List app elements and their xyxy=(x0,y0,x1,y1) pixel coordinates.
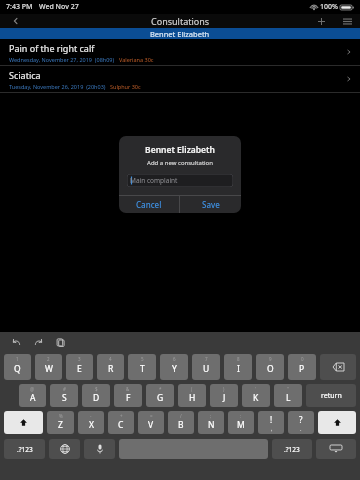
staticText: M xyxy=(237,419,245,431)
staticText: P xyxy=(299,363,305,375)
button[interactable]: ( xyxy=(178,384,206,407)
button[interactable]: 3 xyxy=(66,354,93,380)
staticText: Save xyxy=(202,199,220,210)
button[interactable]: ) xyxy=(210,384,238,407)
button[interactable]: Sciatica xyxy=(0,66,360,93)
staticText: ; xyxy=(210,413,212,419)
button[interactable]: 8 xyxy=(224,354,252,380)
staticText: Wed Nov 27 xyxy=(39,2,79,12)
button[interactable]: Back xyxy=(0,14,32,28)
staticText: Valeriana 30c xyxy=(119,56,154,63)
staticText: 7:43 PM xyxy=(6,2,33,12)
staticText: Main complaint xyxy=(130,176,178,185)
staticText: D xyxy=(93,392,100,404)
button[interactable]: 9 xyxy=(256,354,284,380)
button[interactable]: * xyxy=(146,384,174,407)
button[interactable]: + xyxy=(108,411,134,434)
button[interactable]: ? xyxy=(288,411,314,434)
staticText: A xyxy=(30,392,36,404)
staticText: C xyxy=(118,419,124,431)
button[interactable]: Backspace xyxy=(320,354,356,380)
staticText: ? xyxy=(299,414,303,425)
staticText: W xyxy=(45,363,53,375)
staticText: + xyxy=(120,413,123,419)
staticText: ) xyxy=(223,386,225,392)
button[interactable]: Emoji and languages xyxy=(49,439,80,459)
button[interactable]: Main complaint xyxy=(127,174,233,187)
staticText: E xyxy=(77,363,82,375)
staticText: T xyxy=(140,363,145,375)
staticText: % xyxy=(59,413,63,419)
button[interactable]: .?123 xyxy=(272,439,312,459)
button[interactable]: 1 xyxy=(4,354,31,380)
button[interactable]: Menu xyxy=(334,14,360,28)
staticText: 2 xyxy=(47,356,50,362)
button[interactable]: ; xyxy=(198,411,224,434)
button[interactable]: @ xyxy=(19,384,46,407)
button[interactable]: % xyxy=(47,411,74,434)
button[interactable]: # xyxy=(50,384,78,407)
staticText: , xyxy=(271,425,273,432)
staticText: G xyxy=(157,392,164,404)
staticText: / xyxy=(180,413,182,419)
staticText: Consultations xyxy=(151,15,210,27)
staticText: # xyxy=(63,386,66,392)
button[interactable]: - xyxy=(78,411,104,434)
button[interactable]: 5 xyxy=(128,354,156,380)
staticText: 4 xyxy=(109,356,112,362)
button[interactable]: Save xyxy=(180,196,241,213)
staticText: J xyxy=(223,392,226,404)
button[interactable]: .?123 xyxy=(4,439,45,459)
staticText: H xyxy=(189,392,196,404)
button[interactable]: Pain of the right calf xyxy=(0,39,360,66)
staticText: ' xyxy=(255,386,257,392)
staticText: F xyxy=(126,392,131,404)
staticText: - xyxy=(90,413,92,419)
button[interactable]: Shift xyxy=(318,411,356,434)
staticText: & xyxy=(126,386,130,392)
button[interactable]: Shift xyxy=(4,411,43,434)
staticText: .?123 xyxy=(17,445,33,454)
staticText: Wednesday, November 27, 2019 (08h09) xyxy=(9,56,115,63)
staticText: N xyxy=(208,419,215,431)
staticText: 3 xyxy=(78,356,81,362)
staticText: . xyxy=(300,425,302,432)
staticText: U xyxy=(203,363,210,375)
button[interactable]: 2 xyxy=(35,354,62,380)
button[interactable]: Undo xyxy=(10,336,22,348)
button[interactable]: " xyxy=(274,384,302,407)
button[interactable]: $ xyxy=(82,384,110,407)
button[interactable]: / xyxy=(168,411,194,434)
staticText: ! xyxy=(270,414,273,425)
button[interactable]: Hide keyboard xyxy=(316,439,356,459)
button[interactable]: : xyxy=(228,411,254,434)
button[interactable]: & xyxy=(114,384,142,407)
staticText: Q xyxy=(14,363,21,375)
button[interactable]: = xyxy=(138,411,164,434)
staticText: Z xyxy=(58,419,63,431)
staticText: Bennet Elizabeth xyxy=(150,29,210,39)
staticText: O xyxy=(267,363,274,375)
button[interactable]: Redo xyxy=(32,336,44,348)
button[interactable]: Cancel xyxy=(119,196,179,213)
button[interactable]: ' xyxy=(242,384,270,407)
button[interactable]: 4 xyxy=(97,354,124,380)
staticText: 0 xyxy=(301,356,304,362)
button[interactable]: 0 xyxy=(288,354,316,380)
button[interactable]: Dictate xyxy=(84,439,115,459)
button[interactable]: Paste xyxy=(54,336,66,348)
staticText: Sulphur 30c xyxy=(110,83,141,90)
button[interactable]: ! xyxy=(258,411,284,434)
button[interactable]: 6 xyxy=(160,354,188,380)
staticText: $ xyxy=(95,386,98,392)
staticText: " xyxy=(287,386,289,392)
button[interactable]: Add consultation xyxy=(308,14,334,28)
staticText: X xyxy=(89,419,94,431)
staticText: 8 xyxy=(237,356,240,362)
button[interactable]: return xyxy=(306,384,356,407)
staticText: B xyxy=(178,419,184,431)
staticText: 100% xyxy=(320,2,338,12)
staticText: 1 xyxy=(16,356,19,362)
button[interactable]: 7 xyxy=(192,354,220,380)
